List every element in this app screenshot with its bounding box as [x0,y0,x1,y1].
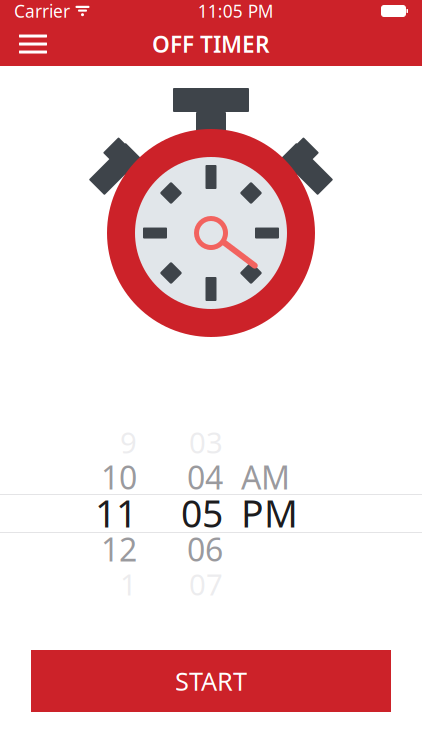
button[interactable]: Menu [6,22,60,66]
staticText: 03 [189,422,223,461]
staticText: 06 [187,528,223,570]
staticText: 05 [181,488,223,538]
staticText: AM [241,456,290,498]
staticText: 11 [95,488,137,538]
staticText: 07 [189,564,223,603]
staticText: 1 [120,564,137,603]
staticText: PM [241,488,298,538]
staticText: OFF TIMER [152,29,270,59]
staticText: 9 [120,422,137,461]
staticText: Carrier [14,0,70,22]
staticText: 10 [101,456,137,498]
staticText: 04 [187,456,223,498]
staticText: 12 [101,528,137,570]
staticText: START [175,664,247,698]
staticText: 11:05 PM [198,0,274,22]
button[interactable]: START [31,650,391,712]
